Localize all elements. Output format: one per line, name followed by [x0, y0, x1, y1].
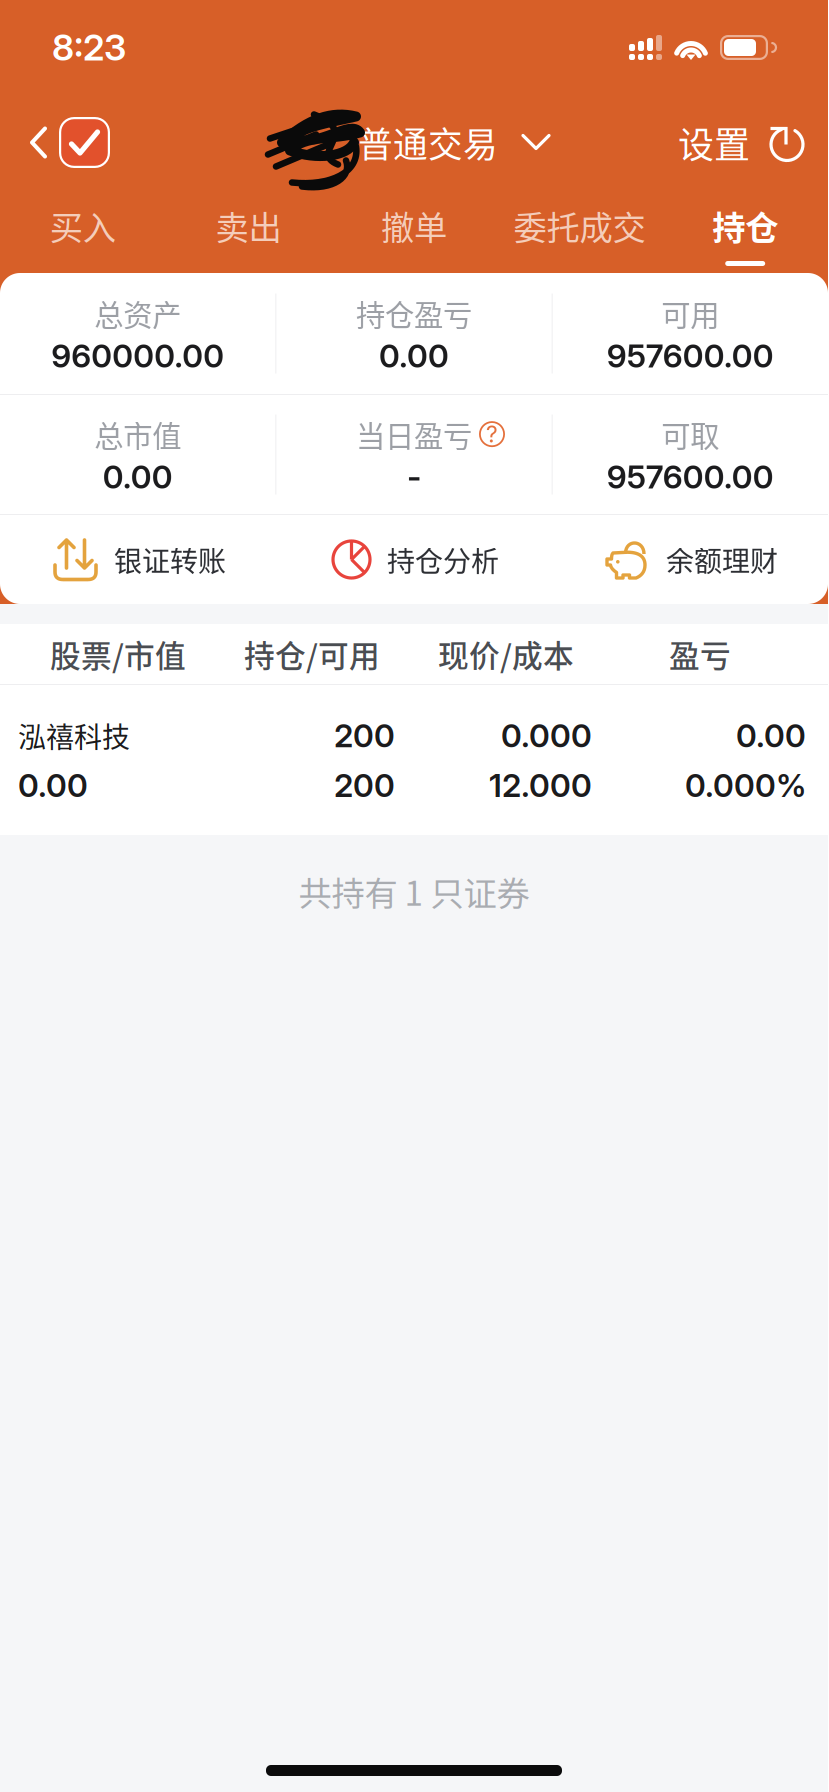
staticText: 0.00 — [736, 716, 806, 755]
staticText: 8:23 — [52, 26, 126, 69]
staticText: 960000.00 — [51, 336, 224, 375]
staticText: 撤单 — [381, 201, 447, 250]
staticText: 银证转账 — [114, 539, 226, 580]
staticText: 持仓分析 — [387, 539, 499, 580]
staticText: 可取 — [661, 413, 719, 455]
staticText: 0.00 — [103, 457, 173, 496]
staticText: 泓禧科技 — [18, 715, 130, 756]
staticText: 买入 — [50, 201, 116, 250]
button[interactable]: 卖出 — [166, 190, 331, 273]
staticText: 总资产 — [94, 292, 181, 334]
button[interactable]: -普通交易 — [246, 95, 552, 190]
staticText: 持仓 — [712, 201, 778, 250]
button[interactable]: 余额理财 — [552, 515, 828, 604]
button[interactable]: 撤单 — [331, 190, 497, 273]
staticText: 委托成交 — [514, 201, 646, 250]
staticText: 股票/市值 — [50, 632, 186, 676]
staticText: 0.000 — [501, 716, 592, 755]
staticText: 可用 — [661, 292, 719, 334]
button[interactable]: 持仓 — [662, 190, 828, 273]
staticText: 盈亏 — [669, 632, 731, 676]
staticText: ? — [486, 420, 498, 448]
staticText: 共持有 1 只证券 — [298, 867, 529, 915]
staticText: 总市值 — [94, 413, 181, 455]
staticText: 余额理财 — [666, 539, 778, 580]
staticText: 200 — [334, 766, 395, 805]
button[interactable]: 委托成交 — [497, 190, 662, 273]
staticText: 持仓盈亏 — [356, 292, 472, 334]
button[interactable]: 银证转账 — [0, 515, 276, 604]
button[interactable]: 泓禧科技 — [0, 685, 828, 835]
staticText: 现价/成本 — [438, 632, 574, 676]
staticText: 设置 — [678, 116, 750, 168]
staticText: 957600.00 — [607, 336, 774, 375]
button[interactable]: Refresh — [750, 95, 828, 190]
staticText: 0.00 — [18, 766, 88, 805]
staticText: 200 — [334, 716, 395, 755]
button[interactable]: Back — [0, 95, 120, 190]
button[interactable]: 买入 — [0, 190, 166, 273]
staticText: 0.000% — [685, 766, 806, 805]
staticText: - — [407, 457, 421, 496]
staticText: 957600.00 — [607, 457, 774, 496]
button[interactable]: 设置 — [678, 95, 750, 190]
staticText: 12.000 — [489, 766, 592, 805]
staticText: 持仓/可用 — [244, 632, 380, 676]
staticText: 0.00 — [379, 336, 449, 375]
staticText: 卖出 — [215, 201, 281, 250]
button[interactable]: 持仓分析 — [276, 515, 552, 604]
staticText: 当日盈亏 — [356, 413, 472, 455]
staticText: -普通交易 — [346, 117, 498, 168]
